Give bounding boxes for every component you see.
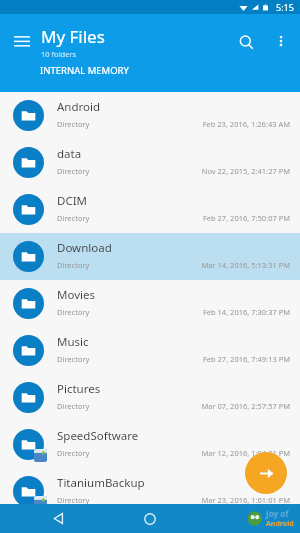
staticText: My Files [41, 25, 105, 48]
staticText: Feb 27, 2016, 7:50:07 PM [0, 213, 290, 223]
staticText: SpeedSoftware [57, 428, 139, 444]
staticText: Android [266, 519, 294, 529]
staticText: Directory [57, 354, 90, 364]
staticText: Mar 07, 2016, 2:57:57 PM [0, 401, 290, 411]
button[interactable]: Home [133, 504, 167, 533]
button[interactable]: data [0, 139, 300, 186]
button[interactable]: Search [232, 28, 260, 56]
button[interactable]: Pictures [0, 374, 300, 421]
staticText: Directory [57, 495, 90, 505]
staticText: Music [57, 334, 89, 350]
staticText: Feb 14, 2016, 7:30:37 PM [0, 307, 290, 317]
staticText: 5:15 [276, 1, 294, 13]
staticText: TitaniumBackup [57, 475, 145, 491]
staticText: Directory [57, 307, 90, 317]
staticText: 10 folders [41, 49, 77, 59]
button[interactable]: Music [0, 327, 300, 374]
staticText: Joy of [266, 508, 289, 519]
button[interactable]: More options [268, 28, 294, 54]
staticText: DCIM [57, 193, 87, 209]
staticText: Movies [57, 287, 95, 303]
staticText: Mar 12, 2016, 1:04:01 PM [0, 448, 290, 458]
staticText: Directory [57, 213, 90, 223]
button[interactable]: SpeedSoftware [0, 421, 300, 468]
button[interactable]: Open navigation drawer [8, 28, 36, 56]
staticText: Feb 23, 2016, 1:26:43 AM [0, 119, 290, 129]
staticText: data [57, 146, 82, 162]
staticText: Pictures [57, 381, 101, 397]
staticText: Mar 14, 2016, 5:13:31 PM [0, 260, 290, 270]
staticText: Feb 27, 2016, 7:49:13 PM [0, 354, 290, 364]
staticText: Mar 23, 2016, 1:01:01 PM [0, 495, 290, 505]
staticText: Directory [57, 401, 90, 411]
button[interactable]: Back [52, 504, 300, 533]
staticText: Nov 22, 2015, 2:41:27 PM [0, 166, 290, 176]
button[interactable]: DCIM [0, 186, 300, 233]
button[interactable]: Movies [0, 280, 300, 327]
button[interactable]: Next [245, 452, 287, 494]
staticText: Directory [57, 260, 90, 270]
button[interactable]: Android [0, 92, 300, 139]
button[interactable]: TitaniumBackup [0, 468, 300, 515]
button[interactable]: Download [0, 233, 300, 280]
staticText: Directory [57, 166, 90, 176]
button[interactable]: INTERNAL MEMORY [40, 64, 300, 77]
staticText: Download [57, 240, 112, 256]
staticText: Directory [57, 448, 90, 458]
staticText: INTERNAL MEMORY [40, 64, 129, 77]
staticText: Directory [57, 119, 90, 129]
staticText: Android [57, 99, 101, 115]
